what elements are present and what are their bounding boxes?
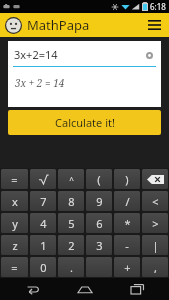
button[interactable]: 3x+2=14 <box>8 41 161 107</box>
staticText: , <box>154 260 157 275</box>
button[interactable]: 4 <box>30 213 56 233</box>
button[interactable] <box>86 257 112 277</box>
staticText: + <box>124 260 131 275</box>
staticText: 9 <box>96 194 103 209</box>
button[interactable]: < <box>142 191 168 211</box>
button[interactable] <box>30 169 56 189</box>
staticText: x <box>12 194 18 209</box>
button[interactable]: + <box>114 257 140 277</box>
staticText: 3x + 2 = 14 <box>15 76 65 90</box>
button[interactable]: ( <box>86 169 112 189</box>
staticText: 0 <box>40 260 47 275</box>
staticText: 3 <box>96 238 103 253</box>
staticText: < <box>152 194 159 209</box>
button[interactable]: z <box>1 235 28 255</box>
button[interactable]: 5 <box>58 213 84 233</box>
button[interactable]: 3 <box>86 235 112 255</box>
staticText: Calculate it! <box>55 115 115 130</box>
button[interactable]: Backspace <box>142 169 168 189</box>
button[interactable]: 6 <box>86 213 112 233</box>
staticText: | <box>152 238 159 253</box>
staticText: 6 <box>96 216 103 231</box>
staticText: 8 <box>68 194 75 209</box>
button[interactable]: x <box>1 191 28 211</box>
button[interactable]: Back <box>12 278 52 300</box>
button[interactable]: * <box>114 213 140 233</box>
button[interactable]: y <box>1 213 28 233</box>
staticText: 7 <box>40 194 47 209</box>
staticText: 1 <box>40 238 47 253</box>
staticText: > <box>152 216 159 231</box>
staticText: 3x+2=14 <box>14 47 58 62</box>
button[interactable]: / <box>114 191 140 211</box>
button[interactable]: Menu <box>142 13 166 37</box>
staticText: 2 <box>68 238 75 253</box>
staticText: . <box>70 260 73 275</box>
button[interactable]: = <box>1 257 28 277</box>
staticText: 6:18 <box>150 1 166 12</box>
staticText: / <box>125 194 130 209</box>
staticText: * <box>124 216 131 231</box>
button[interactable]: | <box>142 235 168 255</box>
button[interactable]: , <box>142 257 168 277</box>
staticText: = <box>11 172 18 187</box>
button[interactable]: 8 <box>58 191 84 211</box>
button[interactable]: . <box>58 257 84 277</box>
button[interactable]: Recent apps <box>117 278 157 300</box>
button[interactable]: = <box>1 169 28 189</box>
button[interactable]: - <box>114 235 140 255</box>
button[interactable]: 7 <box>30 191 56 211</box>
staticText: 4 <box>40 216 47 231</box>
staticText: ^ <box>69 174 74 185</box>
staticText: y <box>12 216 18 231</box>
staticText: MathPapa <box>27 16 90 34</box>
button[interactable]: 0 <box>30 257 56 277</box>
button[interactable]: Clear <box>143 49 155 61</box>
staticText: ) <box>125 172 129 187</box>
staticText: z <box>12 238 18 253</box>
button[interactable]: > <box>142 213 168 233</box>
button[interactable]: Home <box>65 278 105 300</box>
button[interactable]: 1 <box>30 235 56 255</box>
staticText: = <box>11 260 18 275</box>
button[interactable]: 2 <box>58 235 84 255</box>
staticText: 5 <box>68 216 75 231</box>
button[interactable]: ) <box>114 169 140 189</box>
staticText: - <box>125 238 129 253</box>
button[interactable]: ^ <box>58 169 84 189</box>
button[interactable]: Calculate it! <box>8 110 161 135</box>
button[interactable]: 9 <box>86 191 112 211</box>
staticText: ( <box>97 172 101 187</box>
